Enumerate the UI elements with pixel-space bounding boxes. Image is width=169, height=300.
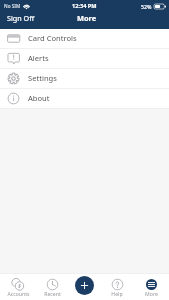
- button[interactable]: Sign Off: [0, 12, 42, 29]
- staticText: Accounts: [7, 290, 30, 297]
- staticText: Sign Off: [7, 13, 35, 23]
- staticText: More: [77, 13, 97, 23]
- button[interactable]: More: [135, 273, 167, 300]
- staticText: 52%: [141, 3, 152, 10]
- button[interactable]: Accounts: [2, 273, 34, 300]
- staticText: Card Controls: [28, 33, 77, 43]
- staticText: About: [28, 93, 50, 103]
- staticText: Recent: [44, 290, 61, 297]
- button[interactable]: Recent: [36, 273, 68, 300]
- button[interactable]: Add: [75, 276, 94, 295]
- staticText: More: [145, 290, 158, 297]
- button[interactable]: Help: [101, 273, 133, 300]
- button[interactable]: Alerts: [0, 49, 169, 68]
- staticText: No SIM: [4, 3, 21, 9]
- staticText: Help: [111, 290, 123, 297]
- button[interactable]: About: [0, 89, 169, 108]
- staticText: Alerts: [28, 53, 49, 63]
- staticText: 12:34 PM: [72, 2, 97, 10]
- button[interactable]: Settings: [0, 69, 169, 88]
- staticText: Settings: [28, 73, 57, 83]
- button[interactable]: Card Controls: [0, 29, 169, 48]
